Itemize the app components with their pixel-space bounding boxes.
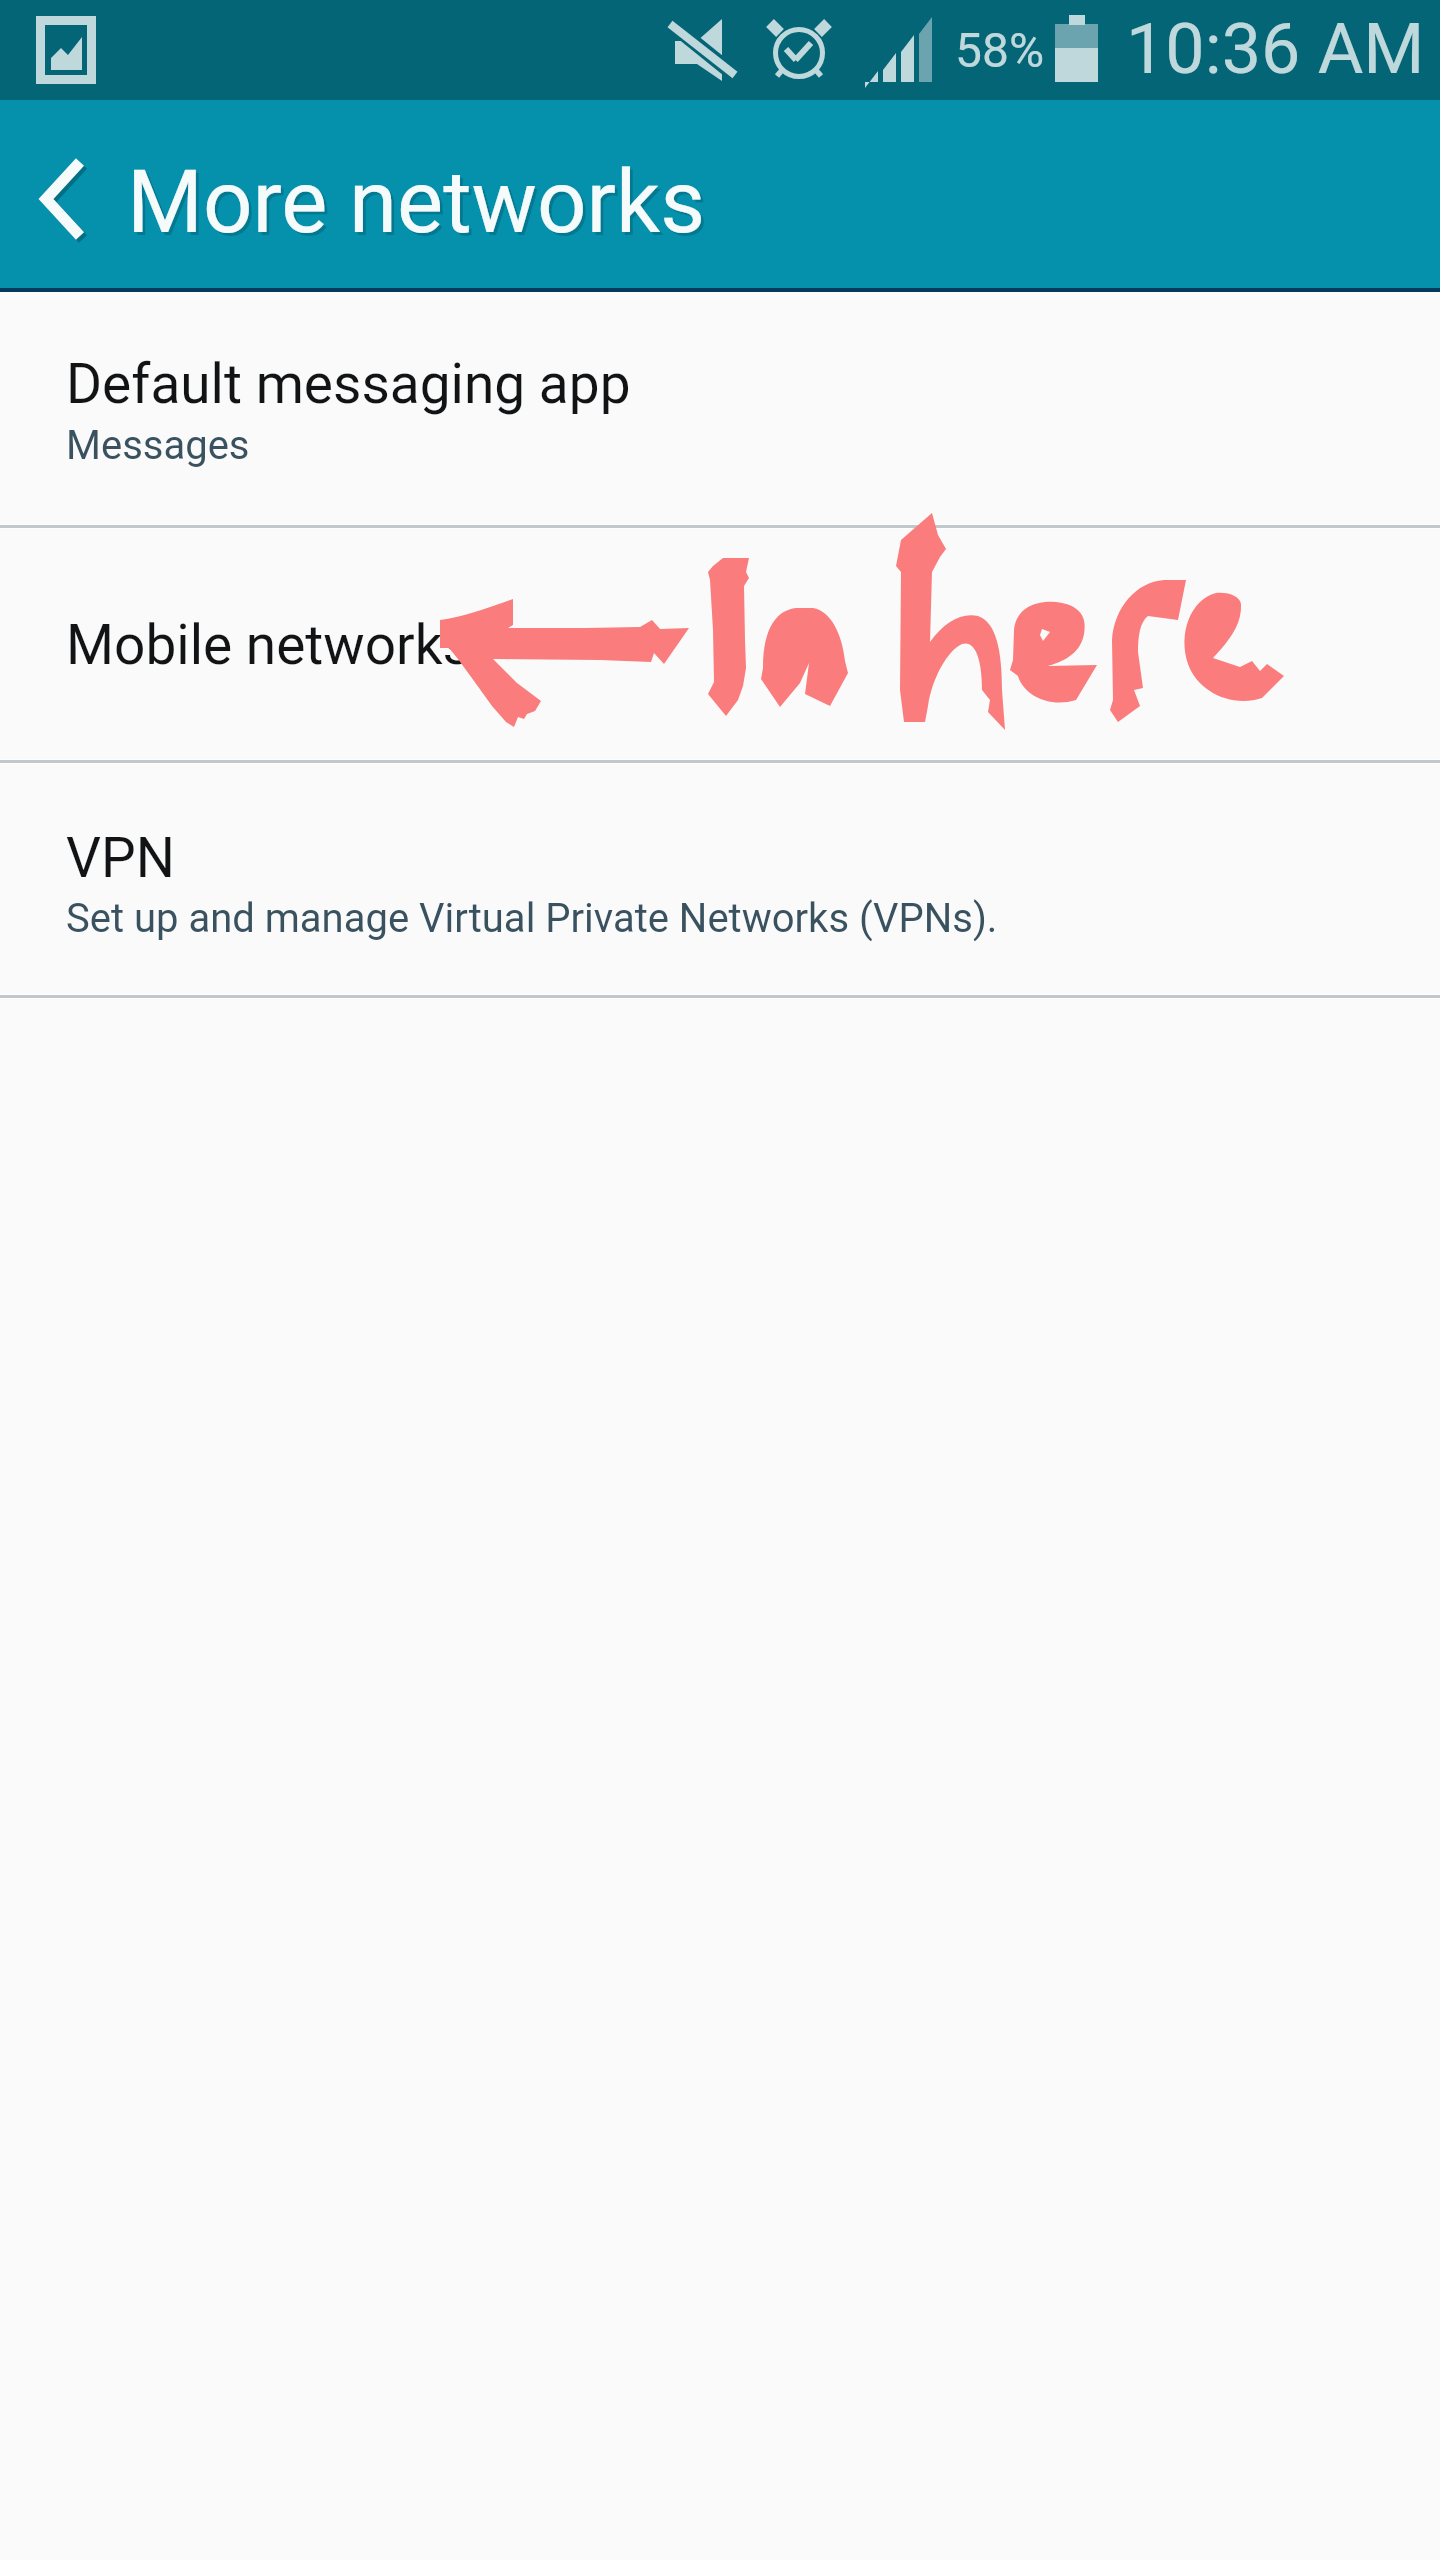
staticText: Set up and manage Virtual Private Networ… bbox=[66, 895, 998, 942]
button[interactable]: Default messaging app bbox=[0, 292, 1440, 524]
button[interactable]: VPN bbox=[0, 764, 1440, 994]
staticText: Messages bbox=[66, 422, 250, 469]
staticText: Default messaging app bbox=[66, 352, 631, 416]
staticText: VPN bbox=[66, 826, 175, 890]
staticText: Mobile networks bbox=[66, 613, 471, 677]
button[interactable]: Back bbox=[0, 100, 128, 288]
staticText: 10:36 AM bbox=[1126, 8, 1425, 90]
staticText: 58% bbox=[955, 22, 1045, 78]
staticText: More networks bbox=[127, 151, 706, 253]
staticText: More networks bbox=[130, 154, 709, 256]
button[interactable]: Mobile networks bbox=[0, 529, 1440, 759]
